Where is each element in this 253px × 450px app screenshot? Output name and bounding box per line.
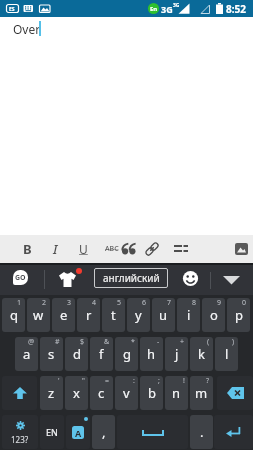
button[interactable]: ! — [165, 376, 188, 410]
staticText: a — [23, 345, 31, 363]
button[interactable]: EN — [40, 415, 64, 449]
staticText: z — [48, 384, 55, 402]
staticText: 1 — [17, 298, 22, 308]
button[interactable]: 1 — [2, 298, 25, 332]
staticText: * — [131, 337, 135, 347]
staticText: EN — [46, 426, 58, 438]
button[interactable]: . — [190, 415, 213, 449]
button[interactable] — [58, 270, 80, 290]
staticText: ( — [207, 337, 210, 347]
button[interactable]: 6 — [127, 298, 150, 332]
staticText: = — [105, 376, 110, 386]
staticText: U — [79, 241, 88, 257]
staticText: 3G — [173, 2, 180, 9]
staticText: 3 — [67, 298, 72, 308]
button[interactable] — [229, 235, 253, 263]
button[interactable]: * — [115, 337, 138, 371]
staticText: 8:52 — [226, 2, 246, 16]
staticText: w — [33, 306, 44, 324]
button[interactable]: , — [92, 415, 115, 449]
staticText: ) — [232, 337, 235, 347]
staticText: k — [198, 345, 205, 363]
staticText: h — [147, 345, 156, 363]
button[interactable]: " — [65, 376, 88, 410]
staticText: v — [123, 384, 130, 402]
staticText: ? — [206, 376, 210, 386]
staticText: y — [135, 306, 142, 324]
button[interactable]: I — [43, 235, 67, 263]
staticText: I — [53, 240, 58, 258]
staticText: q — [10, 306, 18, 324]
staticText: $ — [80, 337, 85, 347]
button[interactable] — [180, 268, 201, 289]
button[interactable]: 3 — [52, 298, 75, 332]
staticText: x — [73, 384, 80, 402]
button[interactable]: $ — [65, 337, 88, 371]
button[interactable]: - — [140, 337, 163, 371]
staticText: - — [157, 337, 160, 347]
staticText: 7 — [167, 298, 172, 308]
staticText: GO — [15, 273, 26, 283]
button[interactable] — [218, 270, 246, 289]
staticText: 9 — [217, 298, 222, 308]
button[interactable]: + — [165, 337, 188, 371]
staticText: # — [55, 337, 60, 347]
button[interactable]: : — [115, 376, 138, 410]
staticText: ' — [58, 376, 60, 386]
staticText: 123? — [11, 434, 29, 445]
staticText: n — [172, 384, 181, 402]
staticText: 2 — [42, 298, 47, 308]
button[interactable]: = — [90, 376, 113, 410]
staticText: @ — [28, 337, 35, 347]
staticText: d — [73, 345, 81, 363]
button[interactable]: ABC — [100, 235, 124, 263]
staticText: j — [175, 345, 179, 363]
button[interactable]: 2 — [27, 298, 50, 332]
button[interactable]: # — [40, 337, 63, 371]
button[interactable]: 5 — [102, 298, 125, 332]
staticText: 0 — [242, 298, 247, 308]
button[interactable]: @ — [15, 337, 38, 371]
staticText: l — [225, 345, 229, 363]
button[interactable]: 0 — [227, 298, 250, 332]
button[interactable]: 123? — [2, 415, 38, 449]
staticText: английский — [103, 271, 160, 285]
button[interactable] — [217, 376, 253, 410]
button[interactable] — [140, 235, 164, 263]
staticText: En — [150, 5, 158, 13]
staticText: p — [235, 306, 243, 324]
staticText: ; — [158, 376, 160, 386]
button[interactable]: ? — [190, 376, 213, 410]
button[interactable]: A — [66, 415, 90, 449]
button[interactable]: ( — [190, 337, 213, 371]
staticText: Over — [13, 21, 41, 37]
button[interactable]: ' — [40, 376, 63, 410]
button[interactable] — [214, 415, 253, 449]
button[interactable]: B — [15, 235, 39, 263]
button[interactable] — [169, 235, 193, 263]
button[interactable]: английский — [94, 268, 168, 288]
button[interactable]: GO — [13, 270, 28, 285]
button[interactable]: ; — [140, 376, 163, 410]
button[interactable] — [117, 415, 188, 449]
staticText: A — [75, 427, 82, 439]
staticText: f — [99, 345, 104, 363]
staticText: t — [111, 306, 116, 324]
button[interactable]: ) — [215, 337, 238, 371]
staticText: b — [148, 384, 156, 402]
staticText: m — [195, 384, 208, 402]
button[interactable]: 8 — [177, 298, 200, 332]
staticText: ABC — [105, 244, 119, 254]
button[interactable] — [2, 376, 37, 410]
staticText: ! — [183, 376, 185, 386]
staticText: 6 — [142, 298, 147, 308]
button[interactable]: 9 — [202, 298, 225, 332]
button[interactable]: U — [71, 235, 95, 263]
staticText: r — [86, 306, 92, 324]
button[interactable]: 4 — [77, 298, 100, 332]
staticText: c — [98, 384, 105, 402]
button[interactable]: & — [90, 337, 113, 371]
staticText: u — [159, 306, 168, 324]
button[interactable]: 7 — [152, 298, 175, 332]
button[interactable] — [117, 235, 141, 263]
